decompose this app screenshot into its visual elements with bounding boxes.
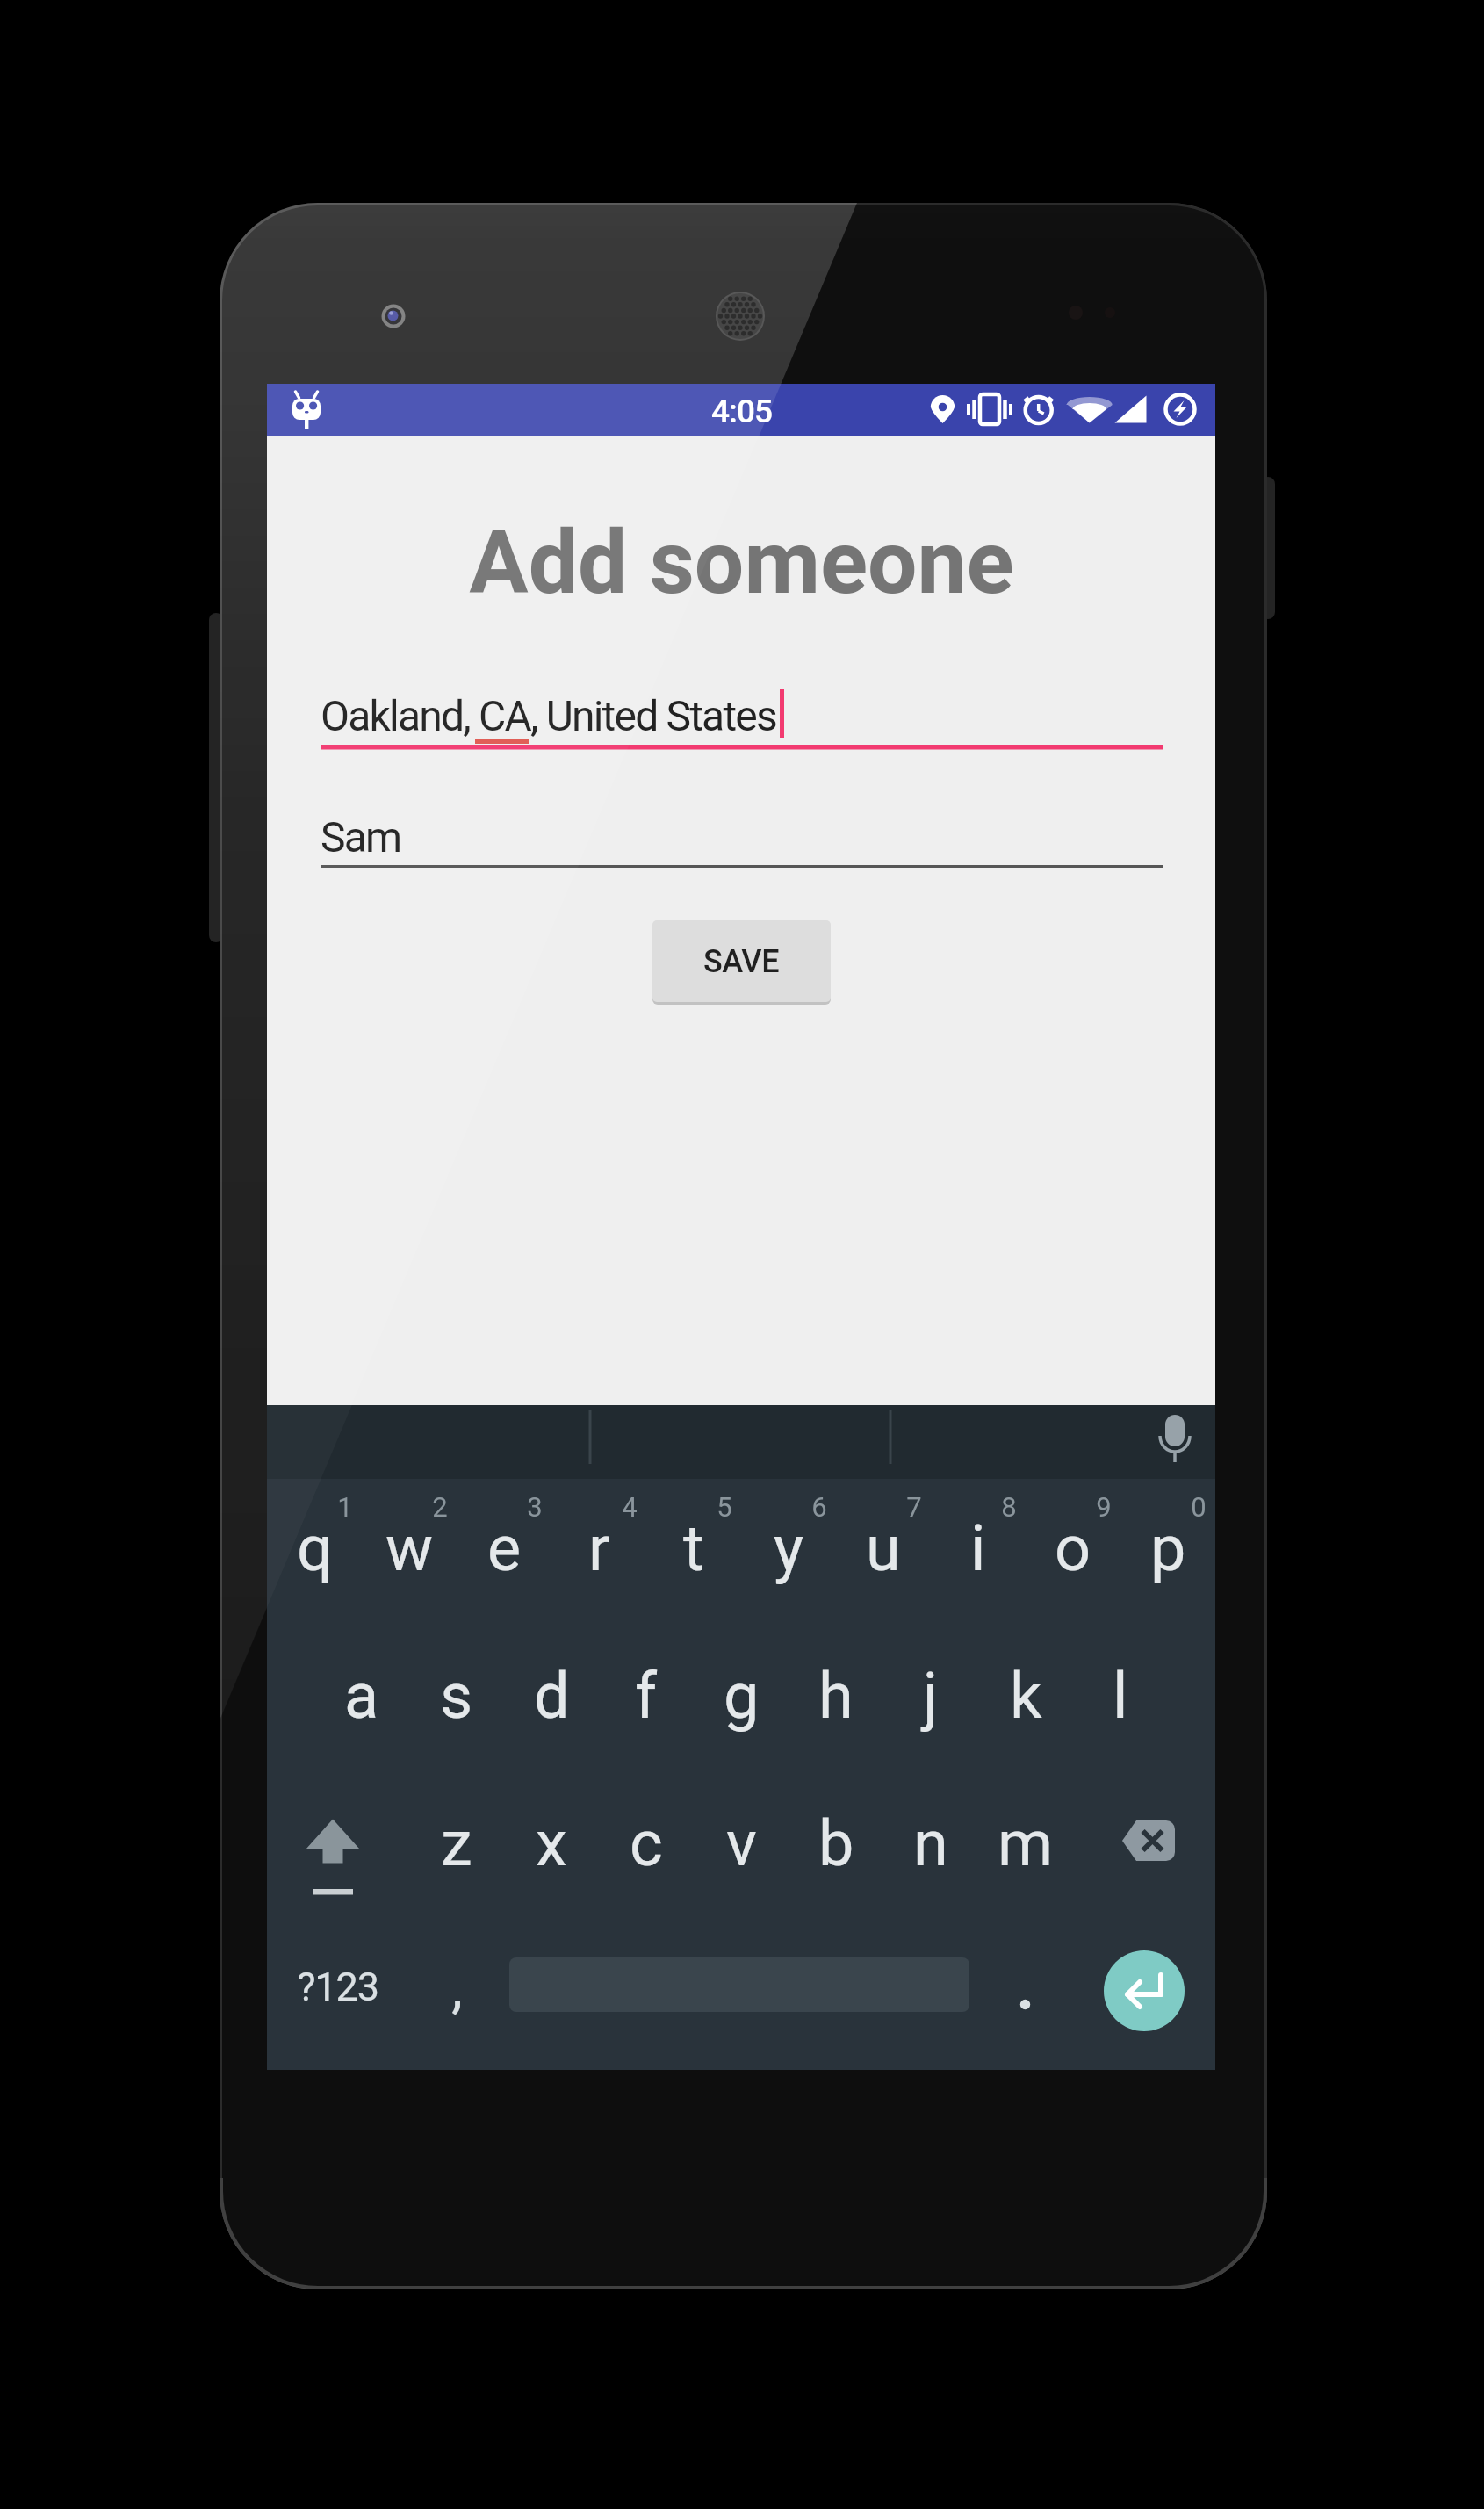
button[interactable]: p: [1120, 1476, 1215, 1620]
button[interactable]: [302, 674, 1180, 753]
staticText: z: [441, 1806, 472, 1880]
button[interactable]: m: [978, 1771, 1073, 1915]
staticText: 3: [527, 1491, 543, 1523]
staticText: SAVE: [703, 943, 780, 980]
staticText: l: [1113, 1659, 1128, 1733]
staticText: ,: [451, 1955, 463, 2021]
staticText: d: [534, 1659, 570, 1733]
button[interactable]: [267, 1921, 413, 2070]
staticText: c: [630, 1806, 663, 1880]
button[interactable]: v: [694, 1771, 789, 1915]
button[interactable]: n: [883, 1771, 978, 1915]
staticText: j: [923, 1659, 939, 1733]
button[interactable]: g: [694, 1624, 789, 1768]
staticText: k: [1010, 1659, 1042, 1733]
button[interactable]: d: [504, 1624, 599, 1768]
staticText: i: [970, 1511, 986, 1585]
staticText: g: [724, 1659, 760, 1733]
button[interactable]: [302, 797, 1180, 871]
button[interactable]: l: [1073, 1624, 1168, 1768]
button[interactable]: y: [741, 1476, 836, 1620]
button[interactable]: [1104, 1950, 1185, 2031]
staticText: Sam: [321, 812, 401, 862]
button[interactable]: j: [883, 1624, 978, 1768]
staticText: ?123: [297, 1964, 378, 2010]
button[interactable]: SAVE: [652, 920, 831, 1002]
staticText: 5: [717, 1491, 732, 1523]
staticText: 7: [906, 1491, 922, 1523]
button[interactable]: a: [314, 1624, 409, 1768]
staticText: x: [536, 1806, 567, 1880]
button[interactable]: [978, 1921, 1070, 2070]
staticText: 4:05: [711, 393, 772, 430]
button[interactable]: [1136, 1405, 1215, 1479]
staticText: 6: [811, 1491, 827, 1523]
staticText: v: [726, 1806, 757, 1880]
staticText: f: [635, 1659, 658, 1733]
button[interactable]: s: [409, 1624, 504, 1768]
staticText: e: [487, 1511, 522, 1585]
staticText: q: [297, 1511, 333, 1585]
staticText: s: [440, 1659, 473, 1733]
staticText: 8: [1001, 1491, 1017, 1523]
staticText: o: [1055, 1511, 1091, 1585]
staticText: 2: [432, 1491, 448, 1523]
staticText: b: [818, 1806, 854, 1880]
staticText: m: [998, 1806, 1054, 1880]
button[interactable]: t: [646, 1476, 741, 1620]
staticText: Add someone: [469, 511, 1014, 614]
button[interactable]: [267, 1774, 409, 1921]
button[interactable]: [413, 1921, 504, 2070]
button[interactable]: k: [978, 1624, 1073, 1768]
staticText: t: [683, 1511, 704, 1585]
button[interactable]: o: [1026, 1476, 1120, 1620]
button[interactable]: b: [789, 1771, 883, 1915]
button[interactable]: e: [457, 1476, 551, 1620]
button[interactable]: r: [551, 1476, 646, 1620]
staticText: p: [1150, 1511, 1186, 1585]
button[interactable]: c: [599, 1771, 694, 1915]
button[interactable]: w: [362, 1476, 457, 1620]
staticText: y: [774, 1511, 804, 1585]
staticText: 1: [337, 1491, 353, 1523]
staticText: h: [818, 1659, 854, 1733]
staticText: r: [588, 1511, 610, 1585]
staticText: n: [913, 1806, 948, 1880]
button[interactable]: i: [931, 1476, 1026, 1620]
staticText: a: [344, 1659, 379, 1733]
staticText: w: [385, 1511, 434, 1585]
staticText: 4: [622, 1491, 638, 1523]
button[interactable]: z: [409, 1771, 504, 1915]
staticText: 9: [1096, 1491, 1112, 1523]
button[interactable]: u: [836, 1476, 931, 1620]
button[interactable]: q: [267, 1476, 362, 1620]
button[interactable]: h: [789, 1624, 883, 1768]
button[interactable]: x: [504, 1771, 599, 1915]
staticText: u: [866, 1511, 901, 1585]
button[interactable]: f: [599, 1624, 694, 1768]
staticText: 0: [1191, 1491, 1207, 1523]
staticText: Oakland, CA, United States: [321, 691, 776, 740]
button[interactable]: [1073, 1774, 1215, 1921]
